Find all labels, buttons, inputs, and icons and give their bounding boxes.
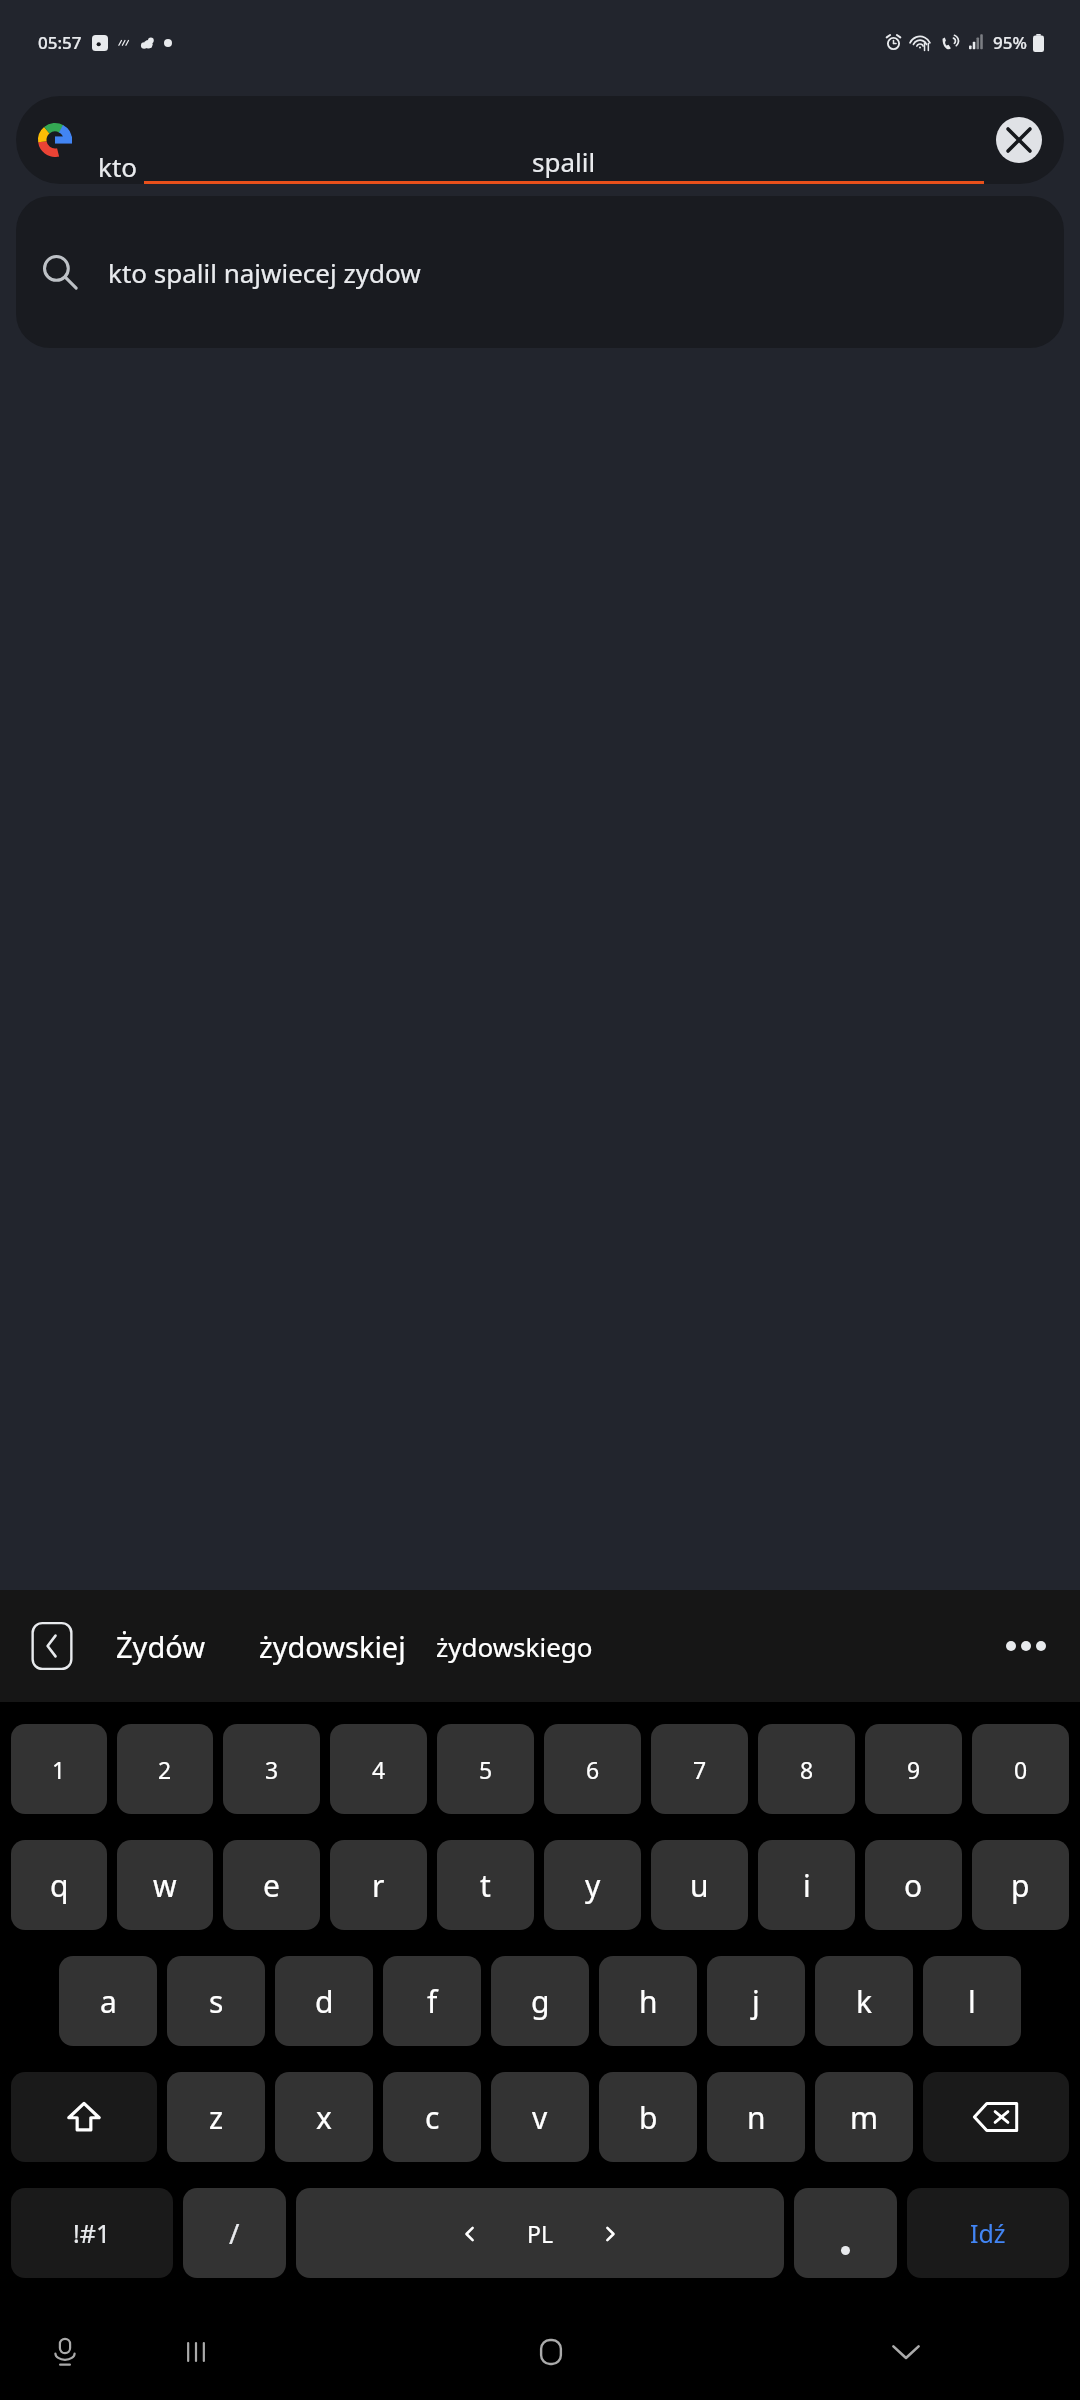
staticText: / <box>229 2214 240 2252</box>
staticText: m <box>850 2097 879 2138</box>
button[interactable]: s <box>167 1956 265 2046</box>
button[interactable]: q <box>11 1840 107 1930</box>
staticText: g <box>531 1981 550 2022</box>
staticText: o <box>904 1865 923 1906</box>
staticText: 05:57 <box>38 31 82 54</box>
staticText: h <box>639 1981 658 2022</box>
button[interactable]: Shift <box>11 2072 157 2162</box>
staticText: 5 <box>479 1754 493 1785</box>
button[interactable]: n <box>707 2072 805 2162</box>
button[interactable]: Home <box>513 2314 589 2390</box>
staticText: Żydów <box>116 1627 205 1666</box>
staticText: kto spalil najwiecej zydow <box>108 255 421 290</box>
staticText: p <box>1011 1865 1030 1906</box>
button[interactable]: 6 <box>544 1724 641 1814</box>
button[interactable]: Recent apps <box>158 2314 234 2390</box>
button[interactable]: żydowskiej <box>259 1627 406 1666</box>
button[interactable]: k <box>815 1956 913 2046</box>
staticText: f <box>427 1981 438 2022</box>
button[interactable]: 5 <box>437 1724 534 1814</box>
button[interactable]: 8 <box>758 1724 855 1814</box>
button[interactable]: w <box>117 1840 213 1930</box>
button[interactable]: e <box>223 1840 320 1930</box>
button[interactable]: Clear search <box>996 117 1042 163</box>
button[interactable]: More suggestions <box>998 1618 1054 1674</box>
button[interactable]: p <box>972 1840 1069 1930</box>
button[interactable]: 7 <box>651 1724 748 1814</box>
button[interactable]: kto spalil najwiecej zydow <box>16 196 1064 348</box>
button[interactable]: o <box>865 1840 962 1930</box>
button[interactable]: 1 <box>11 1724 107 1814</box>
staticText: n <box>747 2097 766 2138</box>
staticText: PL <box>527 2218 553 2249</box>
staticText: z <box>209 2097 224 2138</box>
button[interactable]: 9 <box>865 1724 962 1814</box>
button[interactable]: t <box>437 1840 534 1930</box>
staticText: d <box>315 1981 334 2022</box>
button[interactable]: v <box>491 2072 589 2162</box>
button[interactable]: Żydów <box>116 1627 205 1666</box>
staticText: i <box>803 1865 811 1906</box>
staticText: y <box>585 1865 601 1906</box>
button[interactable]: h <box>599 1956 697 2046</box>
button[interactable]: a <box>59 1956 157 2046</box>
staticText: 7 <box>693 1754 707 1785</box>
staticText: x <box>316 2097 332 2138</box>
button[interactable]: y <box>544 1840 641 1930</box>
staticText: spalil <box>532 144 596 179</box>
staticText: a <box>100 1981 117 2022</box>
button[interactable]: żydowskiego <box>436 1629 593 1664</box>
button[interactable]: Backspace <box>923 2072 1069 2162</box>
button[interactable]: l <box>923 1956 1021 2046</box>
staticText: 1 <box>52 1754 66 1785</box>
staticText: e <box>263 1865 280 1906</box>
button[interactable]: j <box>707 1956 805 2046</box>
button[interactable]: b <box>599 2072 697 2162</box>
staticText: k <box>856 1981 873 2022</box>
button[interactable]: 0 <box>972 1724 1069 1814</box>
staticText: kto <box>98 149 144 184</box>
staticText: w <box>153 1865 177 1906</box>
button[interactable]: z <box>167 2072 265 2162</box>
staticText: u <box>690 1865 709 1906</box>
button[interactable]: c <box>383 2072 481 2162</box>
staticText: żydowskiego <box>436 1629 593 1664</box>
staticText: żydowskiej <box>259 1627 406 1666</box>
button[interactable]: 3 <box>223 1724 320 1814</box>
button[interactable]: Voice input <box>30 2317 100 2387</box>
staticText: q <box>50 1865 69 1906</box>
staticText: r <box>372 1865 385 1906</box>
button[interactable]: 2 <box>117 1724 213 1814</box>
button[interactable]: u <box>651 1840 748 1930</box>
button[interactable]: d <box>275 1956 373 2046</box>
staticText: 9 <box>907 1754 921 1785</box>
staticText: l <box>968 1981 976 2022</box>
staticText: s <box>209 1981 224 2022</box>
button[interactable] <box>794 2188 897 2278</box>
button[interactable]: 4 <box>330 1724 427 1814</box>
button[interactable]: Hide keyboard <box>868 2314 944 2390</box>
staticText: t <box>480 1865 491 1906</box>
staticText: c <box>425 2097 440 2138</box>
staticText: 2 <box>158 1754 172 1785</box>
staticText: !#1 <box>73 2216 111 2250</box>
button[interactable]: Space, Polish layout <box>296 2188 784 2278</box>
button[interactable]: g <box>491 1956 589 2046</box>
button[interactable]: f <box>383 1956 481 2046</box>
button[interactable]: Idź <box>907 2188 1069 2278</box>
staticText: 6 <box>586 1754 600 1785</box>
staticText: 4 <box>372 1754 386 1785</box>
staticText: 0 <box>1014 1754 1028 1785</box>
button[interactable]: i <box>758 1840 855 1930</box>
button[interactable]: !#1 <box>11 2188 173 2278</box>
button[interactable]: Previous <box>30 1620 74 1672</box>
button[interactable]: / <box>183 2188 286 2278</box>
button[interactable]: m <box>815 2072 913 2162</box>
staticText: 95% <box>993 31 1027 54</box>
button[interactable]: kto <box>16 96 1064 184</box>
button[interactable]: x <box>275 2072 373 2162</box>
button[interactable]: r <box>330 1840 427 1930</box>
staticText: v <box>532 2097 548 2138</box>
staticText: b <box>639 2097 658 2138</box>
staticText: 8 <box>800 1754 814 1785</box>
